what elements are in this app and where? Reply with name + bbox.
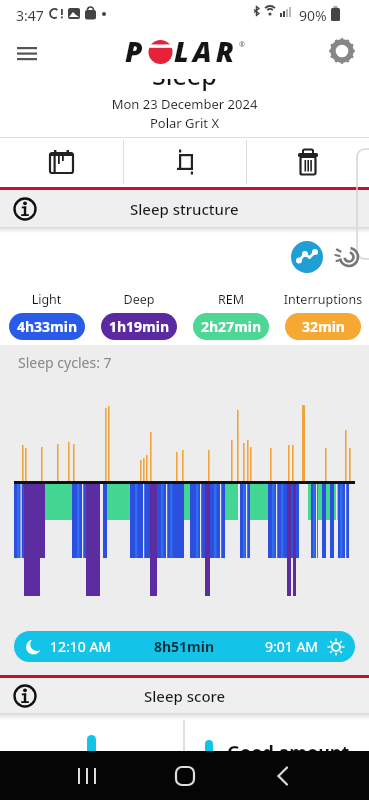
- staticText: Sleep score: [144, 686, 226, 706]
- button[interactable]: 2h27min: [193, 313, 269, 340]
- button[interactable]: Sleep structure: [0, 190, 369, 228]
- staticText: REM: [185, 291, 277, 308]
- staticText: Polar Grit X: [0, 114, 369, 132]
- staticText: ®: [239, 40, 245, 50]
- staticText: 32min: [302, 317, 345, 336]
- button[interactable]: [331, 241, 363, 273]
- staticText: 9:01 AM: [265, 637, 319, 656]
- button[interactable]: [16, 39, 40, 63]
- staticText: 90%: [299, 6, 327, 25]
- button[interactable]: [136, 751, 234, 800]
- staticText: 3:47: [16, 6, 44, 25]
- button[interactable]: [246, 138, 369, 186]
- staticText: 8h51min: [154, 637, 215, 656]
- button[interactable]: Sleep score: [0, 678, 369, 714]
- staticText: Light: [0, 291, 93, 308]
- staticText: Interruptions: [277, 291, 369, 308]
- button[interactable]: 1h19min: [101, 313, 177, 340]
- button[interactable]: 12:10 AM: [14, 631, 355, 662]
- staticText: Mon 23 December 2024: [0, 95, 369, 113]
- button[interactable]: 32min: [285, 313, 361, 340]
- staticText: 2h27min: [201, 317, 262, 336]
- staticText: P: [125, 32, 147, 70]
- button[interactable]: [291, 241, 323, 273]
- staticText: 1h19min: [109, 317, 170, 336]
- staticText: 4h33min: [17, 317, 78, 336]
- button[interactable]: [0, 138, 123, 186]
- button[interactable]: [234, 751, 332, 800]
- button[interactable]: 4h33min: [9, 313, 85, 340]
- staticText: Sleep: [152, 79, 217, 91]
- button[interactable]: [123, 138, 246, 186]
- button[interactable]: [38, 751, 136, 800]
- staticText: Good amount: [227, 740, 350, 765]
- staticText: 12:10 AM: [50, 637, 112, 656]
- button[interactable]: [329, 38, 355, 64]
- staticText: Sleep cycles: 7: [18, 353, 112, 372]
- staticText: Deep: [93, 291, 185, 308]
- staticText: Sleep structure: [130, 199, 239, 219]
- staticText: LAR: [174, 32, 238, 70]
